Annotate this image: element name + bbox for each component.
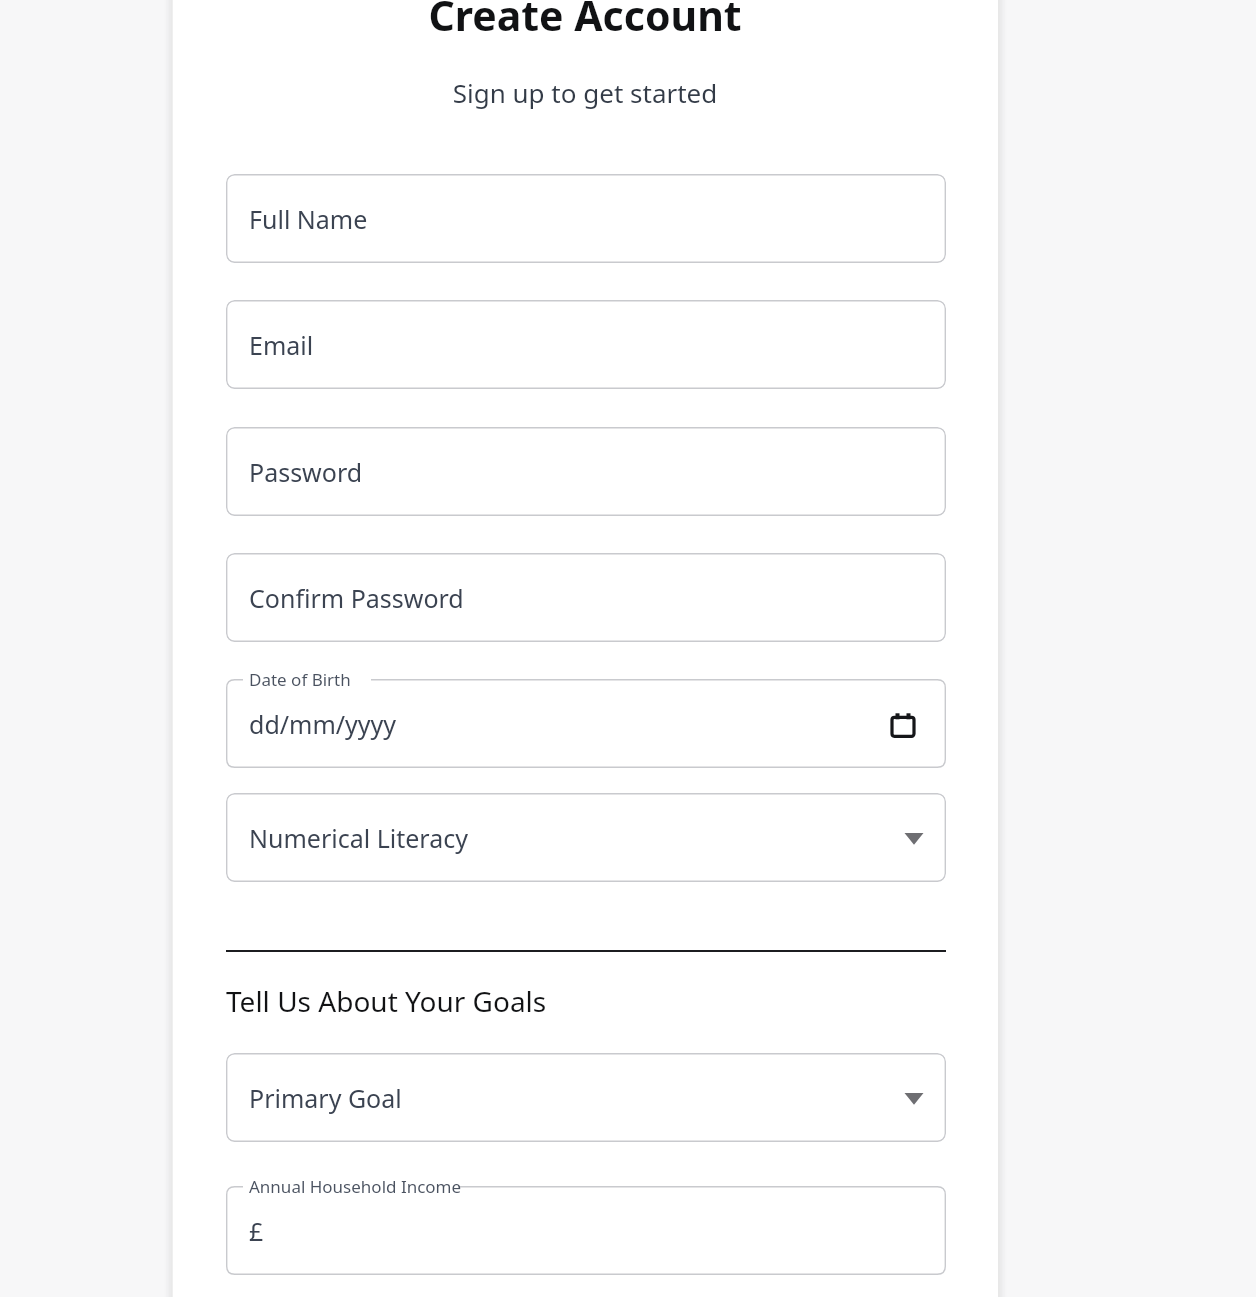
- staticText: Numerical Literacy: [249, 821, 468, 855]
- button[interactable]: Numerical Literacy: [226, 793, 946, 882]
- button[interactable]: Full Name: [226, 174, 946, 263]
- button[interactable]: Password: [226, 427, 946, 516]
- button[interactable]: Email: [226, 300, 946, 389]
- staticText: dd/mm/yyyy: [249, 707, 397, 741]
- staticText: Full Name: [249, 202, 368, 236]
- button[interactable]: Primary Goal: [226, 1053, 946, 1142]
- button[interactable]: Date of Birth: [226, 661, 946, 768]
- staticText: Password: [249, 455, 363, 489]
- button[interactable]: Annual Household Income: [226, 1168, 946, 1275]
- button[interactable]: Confirm Password: [226, 553, 946, 642]
- staticText: Confirm Password: [249, 581, 464, 615]
- staticText: Date of Birth: [249, 668, 351, 691]
- staticText: £: [249, 1214, 264, 1248]
- staticText: Sign up to get started: [172, 75, 998, 110]
- staticText: Tell Us About Your Goals: [226, 982, 547, 1020]
- staticText: Email: [249, 328, 314, 362]
- staticText: Create Account: [172, 0, 998, 43]
- staticText: Primary Goal: [249, 1081, 402, 1115]
- staticText: Annual Household Income: [249, 1175, 462, 1198]
